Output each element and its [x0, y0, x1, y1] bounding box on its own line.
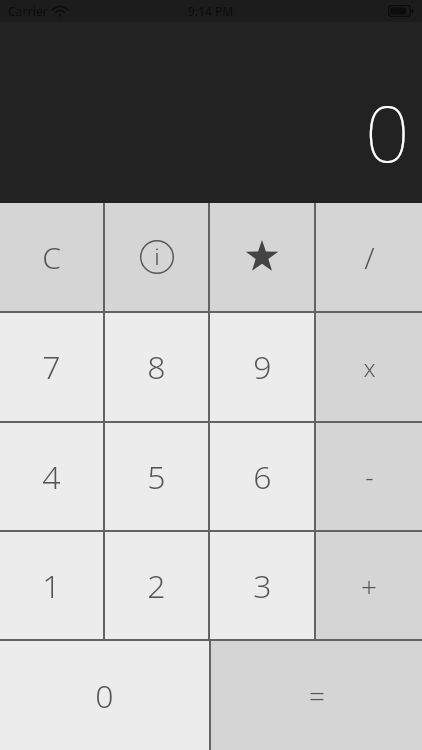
button[interactable]: 8 — [105, 313, 208, 421]
button[interactable]: 2 — [105, 532, 208, 639]
staticText: 5 — [147, 455, 166, 499]
staticText: 6 — [253, 455, 272, 499]
button[interactable]: 6 — [210, 423, 314, 530]
staticText: 8 — [147, 345, 166, 389]
staticText: 4 — [42, 455, 61, 499]
button[interactable]: Clear — [0, 203, 103, 311]
button[interactable]: 5 — [105, 423, 208, 530]
staticText: 0 — [365, 79, 410, 185]
button[interactable]: 9 — [210, 313, 314, 421]
staticText: 9:14 PM — [188, 3, 234, 19]
staticText: x — [363, 351, 376, 384]
button[interactable]: Equals — [211, 641, 422, 750]
button[interactable]: Favorite — [210, 203, 314, 311]
staticText: - — [365, 459, 374, 494]
staticText: Carrier — [8, 3, 48, 19]
button[interactable]: 7 — [0, 313, 103, 421]
staticText: 2 — [147, 564, 166, 608]
button[interactable]: 1 — [0, 532, 103, 639]
staticText: 0 — [95, 674, 114, 718]
button[interactable]: Info — [105, 203, 208, 311]
staticText: C — [42, 237, 61, 278]
staticText: 1 — [42, 564, 61, 608]
button[interactable]: 3 — [210, 532, 314, 639]
button[interactable]: Divide — [316, 203, 422, 311]
button[interactable]: x — [316, 313, 422, 421]
staticText: 9 — [253, 345, 272, 389]
staticText: + — [361, 567, 377, 605]
staticText: = — [309, 677, 325, 715]
staticText: 3 — [253, 564, 272, 608]
staticText: 7 — [42, 345, 61, 389]
button[interactable]: + — [316, 532, 422, 639]
staticText: / — [364, 237, 375, 278]
button[interactable]: 0 — [0, 641, 209, 750]
button[interactable]: 4 — [0, 423, 103, 530]
